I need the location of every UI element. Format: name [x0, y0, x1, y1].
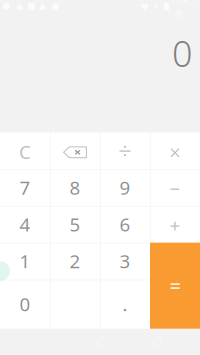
button[interactable]: − [150, 169, 200, 206]
staticText: 4 [19, 212, 30, 237]
button[interactable]: + [150, 206, 200, 243]
staticText: 2 [69, 249, 80, 273]
button[interactable]: 8 [50, 169, 100, 206]
staticText: C [19, 139, 31, 164]
button[interactable]: 6 [100, 206, 150, 243]
button[interactable]: 3 [100, 243, 150, 279]
staticText: − [169, 176, 180, 201]
staticText: 8 [69, 175, 80, 200]
staticText: 7 [19, 175, 30, 200]
staticText: 6 [119, 212, 130, 237]
button[interactable]: = [150, 243, 200, 329]
staticText: 9 [119, 175, 130, 200]
staticText: 5 [69, 212, 80, 237]
button[interactable]: 1 [0, 243, 50, 279]
button[interactable]: 5 [50, 206, 100, 243]
staticText: 1 [19, 249, 30, 273]
button[interactable]: 7 [0, 169, 50, 206]
staticText: 0 [172, 29, 193, 77]
button[interactable]: . [100, 279, 150, 329]
button[interactable]: Delete [50, 132, 100, 169]
staticText: + [169, 213, 180, 238]
button[interactable]: Multiply [150, 132, 200, 169]
button[interactable]: 4 [0, 206, 50, 243]
staticText: 3 [119, 249, 130, 273]
button[interactable]: 2 [50, 243, 100, 279]
button[interactable]: 0 [0, 279, 50, 329]
staticText: 0 [19, 292, 30, 316]
staticText: . [122, 292, 127, 316]
button[interactable]: 9 [100, 169, 150, 206]
button[interactable]: C [0, 132, 50, 169]
button[interactable]: Divide [100, 132, 150, 169]
staticText: = [169, 272, 180, 299]
